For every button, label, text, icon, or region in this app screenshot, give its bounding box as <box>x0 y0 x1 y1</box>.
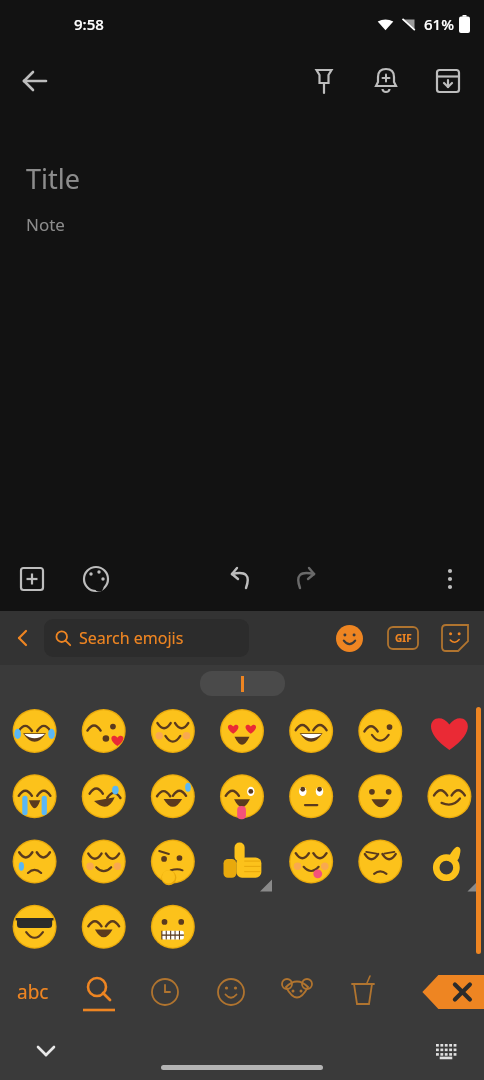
button[interactable]: Switch keyboard <box>426 1031 466 1071</box>
button[interactable]: Smileys <box>198 962 264 1022</box>
button[interactable]: Search <box>66 962 132 1022</box>
button[interactable]: Recent <box>132 962 198 1022</box>
button[interactable]: GIF <box>382 617 424 659</box>
button[interactable]: Add reminder <box>362 57 410 105</box>
button[interactable] <box>200 671 285 696</box>
button[interactable]: Stickers <box>434 617 476 659</box>
button[interactable]: Add <box>10 557 54 601</box>
button[interactable]: Redo <box>282 556 328 602</box>
button[interactable]: Delete <box>414 962 484 1022</box>
staticText: abc <box>17 979 49 1005</box>
button[interactable]: Search emojis <box>44 619 249 657</box>
button[interactable]: Hide keyboard <box>24 1029 68 1073</box>
button[interactable]: Archive <box>424 57 472 105</box>
staticText: GIF <box>395 631 412 645</box>
button[interactable]: Emoji <box>328 617 370 659</box>
button[interactable]: Back <box>12 58 58 104</box>
button[interactable]: Back <box>0 616 44 660</box>
button[interactable]: More options <box>428 557 472 601</box>
button[interactable]: abc <box>0 962 66 1022</box>
staticText: 61% <box>424 14 454 34</box>
button[interactable]: Pin <box>300 57 348 105</box>
staticText: 9:58 <box>74 14 104 34</box>
button[interactable]: Undo <box>218 556 264 602</box>
staticText: Title <box>26 160 80 197</box>
staticText: Note <box>26 213 65 236</box>
staticText: Search emojis <box>79 627 184 649</box>
button[interactable]: Food <box>330 962 396 1022</box>
button[interactable]: Colour <box>74 557 118 601</box>
button[interactable]: Animals <box>264 962 330 1022</box>
